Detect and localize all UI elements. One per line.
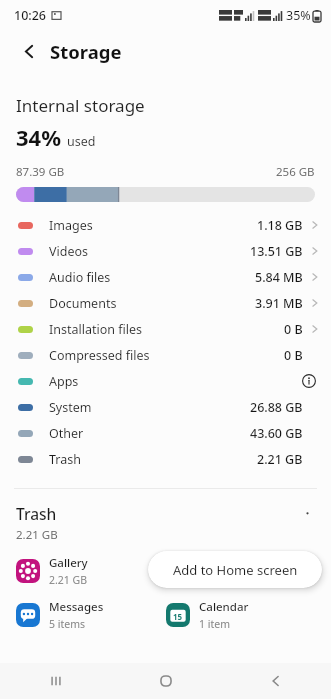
staticText: 87.39 GB — [16, 164, 65, 180]
button[interactable]: Trash — [0, 446, 331, 472]
staticText: Videos — [49, 243, 89, 260]
staticText: Documents — [49, 295, 117, 312]
button[interactable]: Images — [0, 212, 331, 238]
button[interactable]: Home — [111, 663, 221, 699]
staticText: Messages — [49, 599, 104, 615]
staticText: used — [67, 133, 96, 150]
other: Apps info — [302, 374, 316, 388]
button[interactable]: Documents — [0, 290, 331, 316]
button[interactable]: Messages — [16, 599, 166, 631]
staticText: Other — [49, 425, 84, 442]
staticText: Gallery — [49, 555, 88, 571]
staticText: 5.84 MB — [255, 269, 303, 286]
staticText: Trash — [49, 451, 81, 468]
staticText: Images — [49, 217, 93, 234]
button[interactable]: Audio files — [0, 264, 331, 290]
staticText: 10:26 — [14, 7, 47, 24]
staticText: 2.21 GB — [16, 527, 58, 543]
button[interactable]: More options — [297, 503, 317, 523]
button[interactable]: Other — [0, 420, 331, 446]
staticText: 1.92 KB — [199, 573, 236, 587]
staticText: Compressed files — [49, 347, 150, 364]
button[interactable]: Recents — [0, 663, 111, 699]
staticText: Add to Home screen — [173, 561, 298, 579]
staticText: 1 item — [199, 617, 230, 631]
staticText: 256 GB — [276, 164, 315, 180]
staticText: Apps — [49, 373, 79, 390]
button[interactable]: Apps — [0, 368, 331, 394]
staticText: 5 items — [49, 617, 86, 631]
staticText: Audio files — [49, 269, 111, 286]
button[interactable]: Add to Home screen — [148, 551, 322, 588]
staticText: 13.51 GB — [250, 243, 303, 260]
button[interactable]: Videos — [0, 238, 331, 264]
staticText: 3.91 MB — [255, 295, 303, 312]
staticText: 2.21 GB — [257, 451, 303, 468]
staticText: 34% — [16, 122, 62, 152]
staticText: 15 — [173, 611, 183, 622]
staticText: 35% — [286, 7, 311, 24]
staticText: Samsung Notes — [199, 555, 286, 571]
staticText: Trash — [16, 503, 57, 524]
staticText: 43.60 GB — [250, 425, 303, 442]
staticText: Storage — [50, 39, 122, 64]
staticText: 2.21 GB — [49, 573, 88, 587]
button[interactable]: Back — [14, 36, 44, 66]
button[interactable]: Samsung Notes — [166, 555, 317, 587]
staticText: System — [49, 399, 92, 416]
staticText: 0 B — [284, 347, 303, 364]
staticText: 26.88 GB — [250, 399, 303, 416]
staticText: Internal storage — [16, 94, 145, 117]
staticText: Calendar — [199, 599, 249, 615]
button[interactable]: 15 — [166, 599, 317, 631]
staticText: Installation files — [49, 321, 143, 338]
staticText: 0 B — [284, 321, 303, 338]
button[interactable]: Back — [221, 663, 331, 699]
button[interactable]: Installation files — [0, 316, 331, 342]
button[interactable]: System — [0, 394, 331, 420]
button[interactable]: Compressed files — [0, 342, 331, 368]
button[interactable]: Gallery — [16, 555, 166, 587]
staticText: 1.18 GB — [257, 217, 303, 234]
